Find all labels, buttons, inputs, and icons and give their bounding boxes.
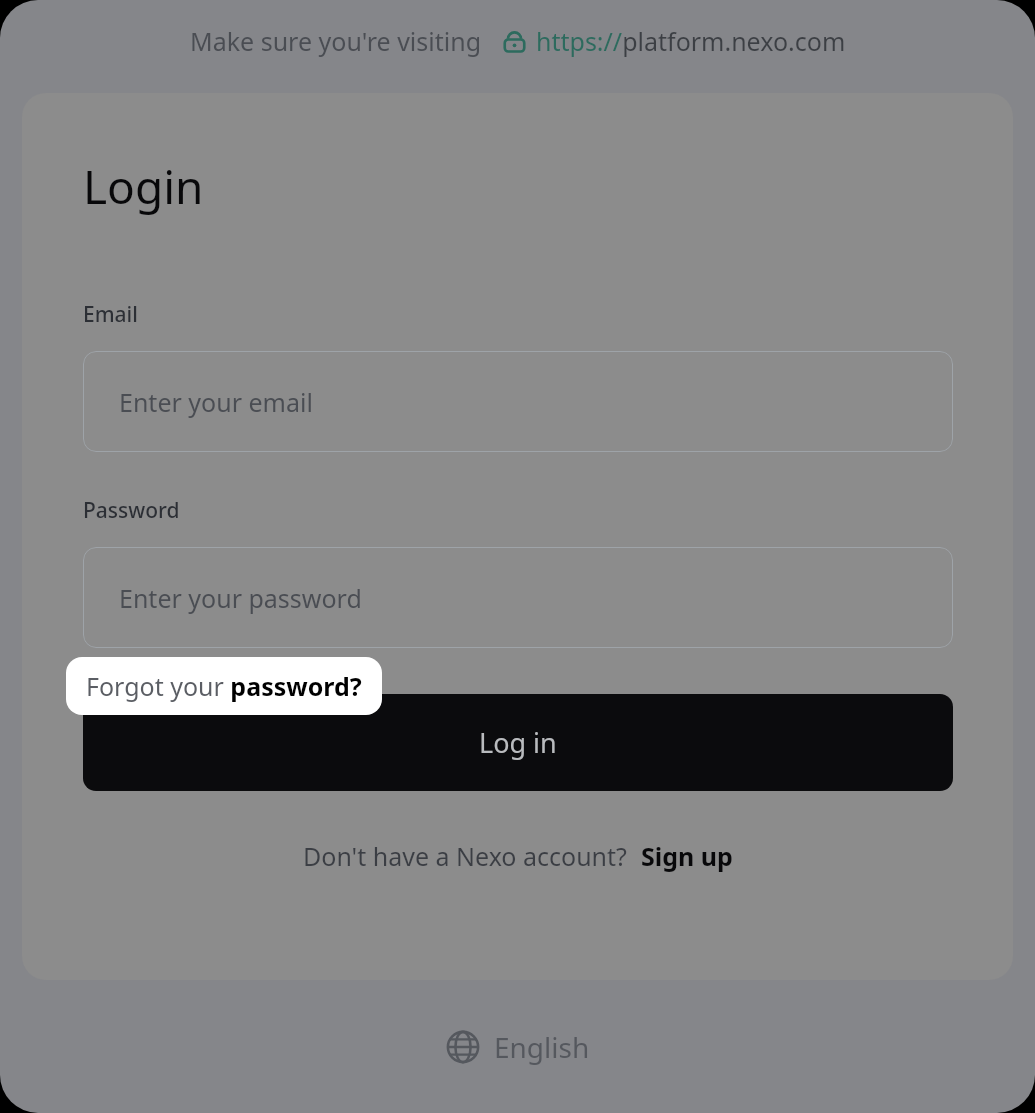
staticText: https://platform.nexo.com <box>536 24 846 58</box>
button[interactable]: Sign up <box>641 839 733 873</box>
staticText: Don't have a Nexo account? <box>303 839 627 873</box>
staticText: Enter your password <box>119 581 362 615</box>
staticText: Make sure you're visiting <box>190 24 482 58</box>
staticText: Enter your email <box>119 385 313 419</box>
staticText: English <box>494 1028 590 1066</box>
button[interactable]: Forgot your password? <box>66 657 382 715</box>
staticText: Email <box>83 300 138 329</box>
staticText: Login <box>83 155 204 218</box>
button[interactable]: Enter your password <box>83 547 953 648</box>
staticText: Log in <box>479 724 557 761</box>
button[interactable]: English <box>440 1024 596 1070</box>
staticText: Sign up <box>641 839 733 873</box>
button[interactable]: Log in <box>83 694 953 791</box>
button[interactable]: Enter your email <box>83 351 953 452</box>
staticText: Password <box>83 496 180 525</box>
other: Secure connection <box>502 29 527 54</box>
staticText: Forgot your password? <box>86 669 362 703</box>
